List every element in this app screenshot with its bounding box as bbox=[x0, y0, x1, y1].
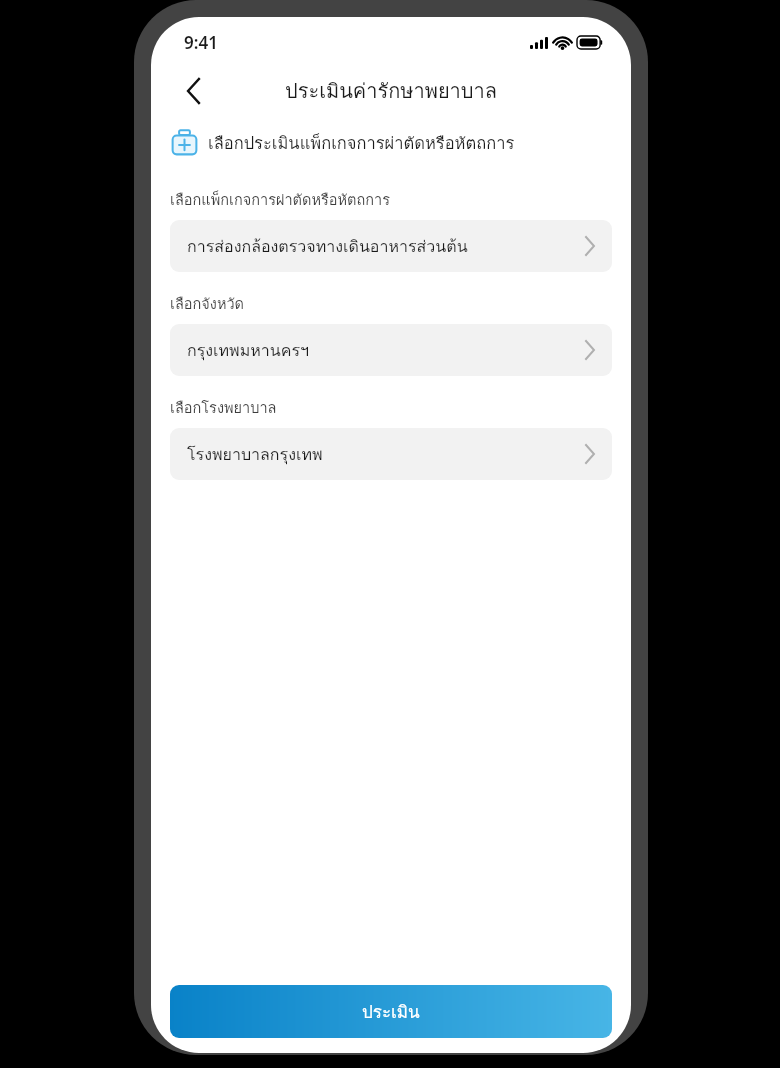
button[interactable]: ประเมิน bbox=[170, 985, 612, 1038]
staticText: กรุงเทพมหานครฯ bbox=[187, 338, 309, 363]
button[interactable]: โรงพยาบาลกรุงเทพ bbox=[170, 428, 612, 480]
button[interactable]: Back bbox=[171, 69, 215, 113]
staticText: เลือกประเมินแพ็กเกจการผ่าตัดหรือหัตถการ bbox=[208, 130, 515, 156]
staticText: ประเมิน bbox=[362, 998, 420, 1025]
button[interactable]: การส่องกล้องตรวจทางเดินอาหารส่วนต้น bbox=[170, 220, 612, 272]
staticText: เลือกแพ็กเกจการผ่าตัดหรือหัตถการ bbox=[170, 188, 390, 211]
staticText: ประเมินค่ารักษาพยาบาล bbox=[221, 75, 561, 107]
button[interactable]: กรุงเทพมหานครฯ bbox=[170, 324, 612, 376]
staticText: 9:41 bbox=[184, 31, 218, 54]
staticText: เลือกโรงพยาบาล bbox=[170, 396, 277, 419]
staticText: เลือกจังหวัด bbox=[170, 292, 245, 315]
staticText: การส่องกล้องตรวจทางเดินอาหารส่วนต้น bbox=[187, 234, 468, 259]
staticText: โรงพยาบาลกรุงเทพ bbox=[187, 442, 323, 467]
